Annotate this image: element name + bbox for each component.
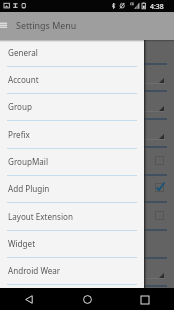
button[interactable]: Widget [0,231,144,258]
button[interactable] [0,231,174,259]
staticText: Add Plugin [8,183,50,194]
button[interactable] [0,120,174,148]
staticText: Layout Extension [8,211,73,222]
staticText: Settings Menu [16,19,77,31]
button[interactable]: Group [0,94,144,121]
button[interactable]: Option enabled [155,183,164,192]
staticText: Prefix [8,129,30,140]
button[interactable]: GroupMail [0,149,144,176]
staticText: GroupMail [8,156,49,167]
staticText: 4:38 [150,2,164,11]
button[interactable]: Back [0,288,58,310]
button[interactable]: Open navigation drawer [0,17,12,31]
staticText: Account [8,74,39,85]
button[interactable]: Layout Extension [0,204,144,231]
button[interactable]: Home [58,288,116,310]
button[interactable] [0,40,174,65]
button[interactable]: General [0,40,144,67]
button[interactable]: Option disabled [0,148,174,176]
button[interactable]: Account [0,67,144,94]
button[interactable]: Recent apps [116,288,174,310]
button[interactable]: Option disabled [0,203,174,231]
button[interactable]: Option disabled [155,211,164,220]
button[interactable] [0,92,174,120]
button[interactable]: Option disabled [155,156,164,165]
button[interactable]: Prefix [0,122,144,149]
button[interactable] [0,259,174,287]
button[interactable]: Android Wear [0,258,144,285]
staticText: Widget [8,238,36,249]
button[interactable]: Add Plugin [0,176,144,203]
staticText: Group [8,101,32,112]
button[interactable]: General [0,40,144,288]
staticText: Android Wear [8,265,61,276]
button[interactable] [0,64,174,92]
staticText: General [8,47,38,58]
button[interactable]: Option enabled [0,175,174,203]
